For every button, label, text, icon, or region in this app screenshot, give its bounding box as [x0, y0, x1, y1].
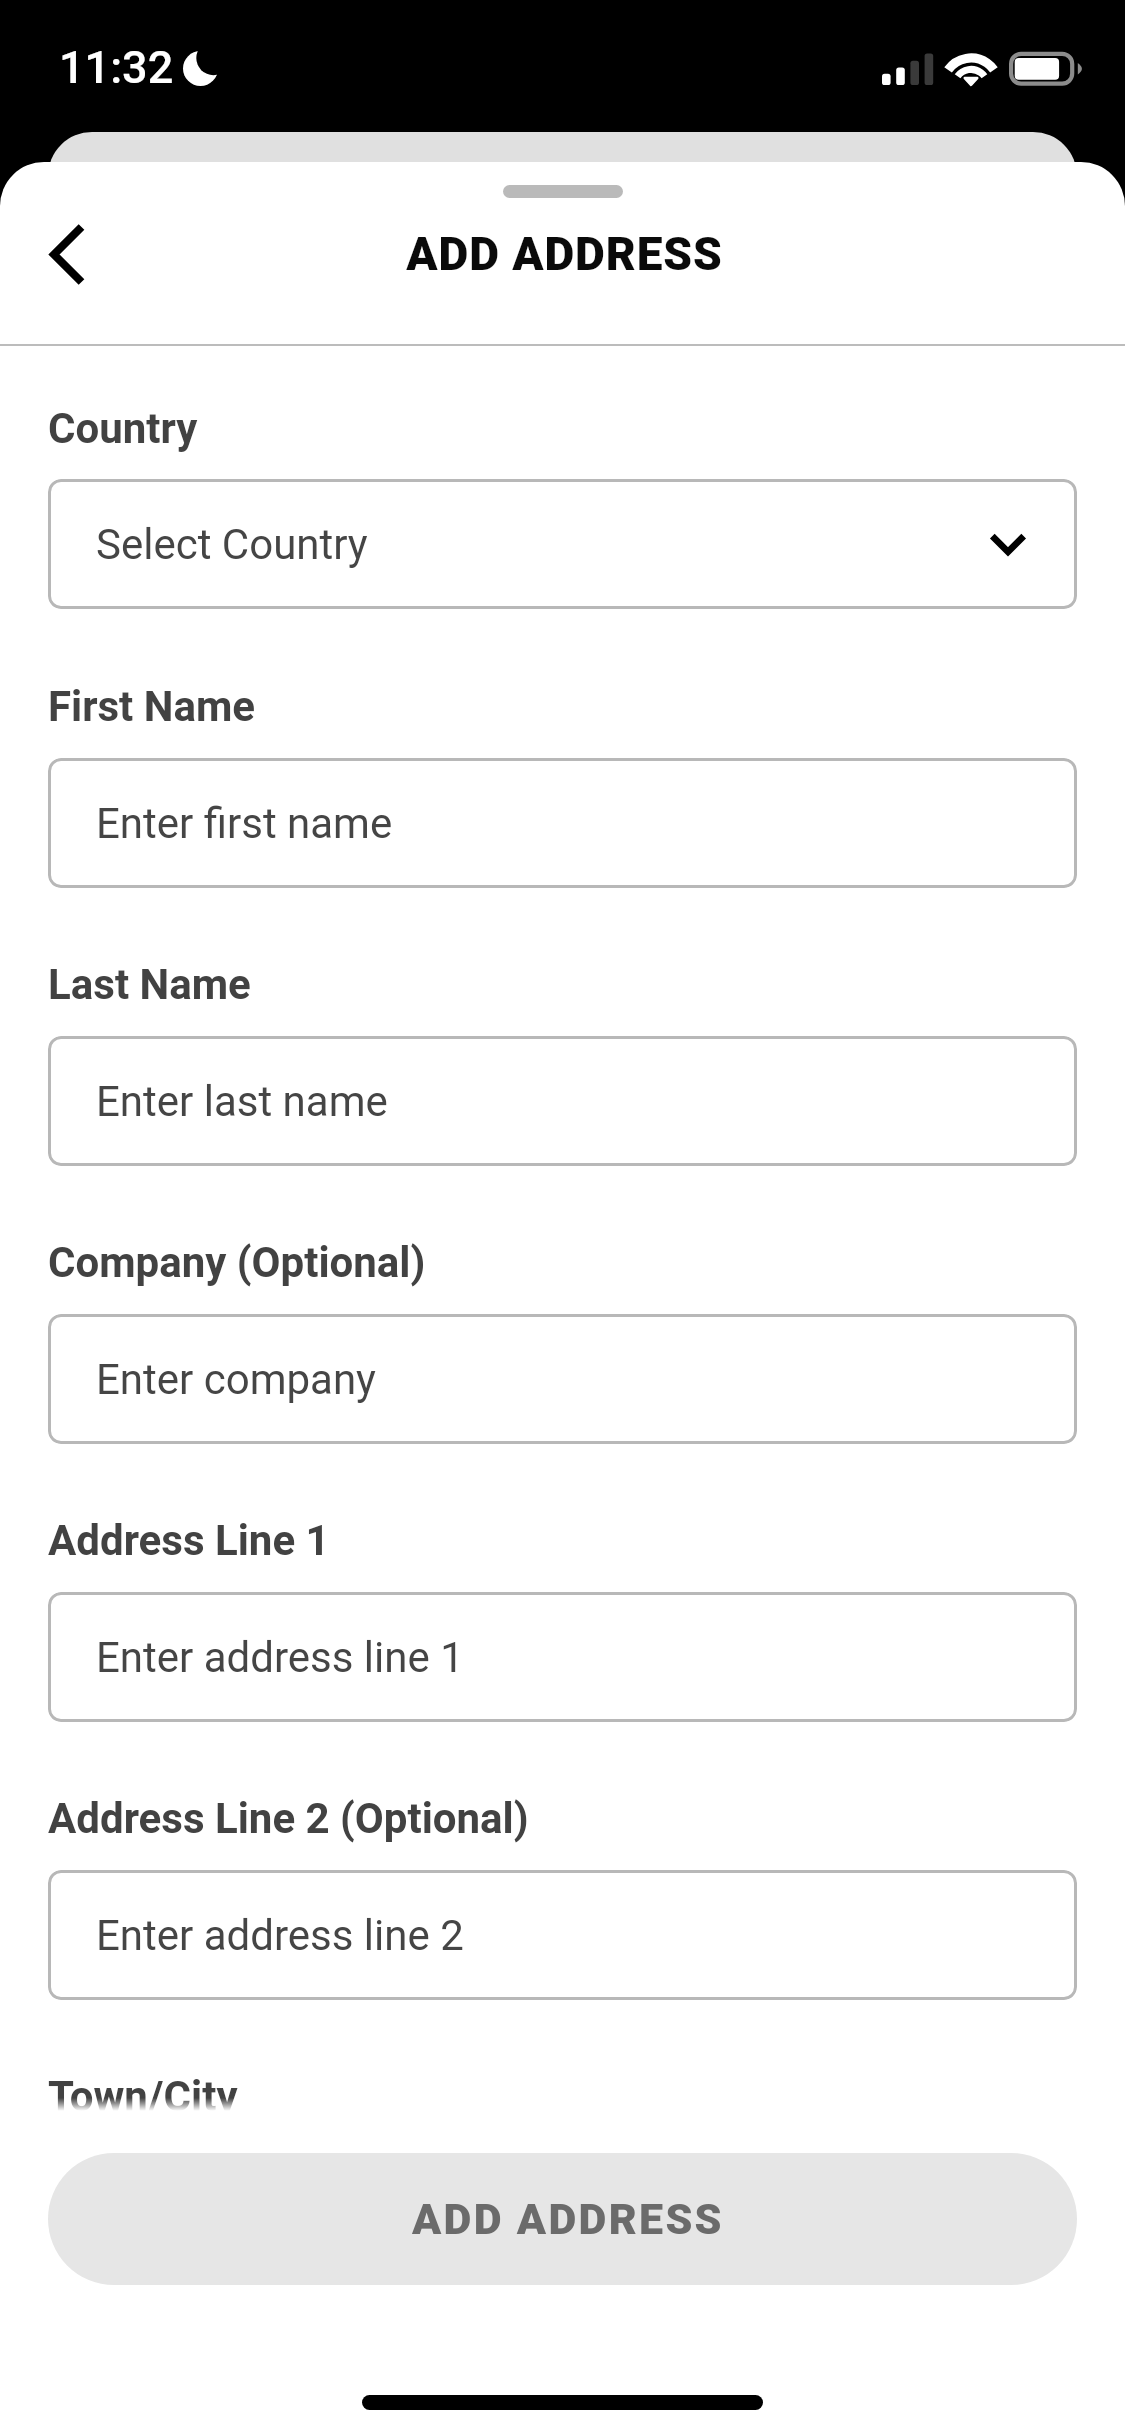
- button[interactable]: Address Line 2 (Optional): [48, 1870, 1077, 2000]
- staticText: Enter address line 2: [96, 1911, 464, 1960]
- staticText: Town/City: [48, 2072, 238, 2121]
- button[interactable]: Town/City: [48, 2148, 1077, 2278]
- staticText: Select Country: [96, 520, 368, 569]
- staticText: ADD ADDRESS: [412, 2194, 724, 2244]
- staticText: Company (Optional): [48, 1238, 426, 1287]
- button[interactable]: First Name: [48, 758, 1077, 888]
- staticText: Address Line 1: [48, 1516, 330, 1565]
- button[interactable]: Company (Optional): [48, 1314, 1077, 1444]
- staticText: 11:32: [59, 41, 174, 94]
- button[interactable]: Back: [15, 202, 119, 306]
- staticText: Address Line 2 (Optional): [48, 1794, 529, 1843]
- staticText: Enter company: [96, 1355, 376, 1404]
- button[interactable]: Country: [48, 479, 1077, 609]
- staticText: ADD ADDRESS: [2, 227, 1125, 281]
- button[interactable]: ADD ADDRESS: [48, 2153, 1077, 2285]
- button[interactable]: Last Name: [48, 1036, 1077, 1166]
- staticText: Enter address line 1: [96, 1633, 464, 1682]
- staticText: First Name: [48, 682, 256, 731]
- staticText: Last Name: [48, 960, 251, 1009]
- button[interactable]: Address Line 1: [48, 1592, 1077, 1722]
- staticText: Country: [48, 404, 198, 453]
- staticText: Enter last name: [96, 1077, 388, 1126]
- staticText: Enter first name: [96, 799, 393, 848]
